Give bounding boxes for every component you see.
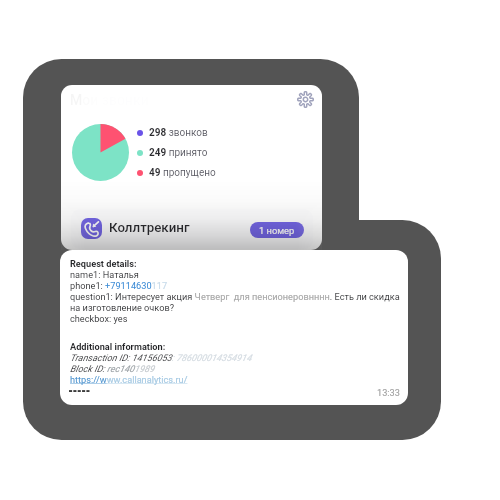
staticText: Request details: [70,258,137,269]
staticText: Коллтрекинг [109,220,190,236]
button[interactable]: Settings [291,85,319,113]
staticText: phone1: +79114630117 [70,280,168,291]
button[interactable]: Коллтрекинг [71,209,313,249]
staticText: name1: Наталья [70,269,139,280]
staticText: 49 пропущено [149,167,216,179]
staticText: checkbox: yes [70,313,128,324]
staticText: 13:33 [377,387,400,398]
staticText: Transaction ID: 14156053: 78600001435491… [70,352,252,363]
staticText: 298 звонков [149,127,208,139]
staticText: 1 номер [259,225,295,236]
staticText: Block ID: rec1401989 [70,363,155,374]
staticText: 249 принято [149,147,208,159]
staticText: https://www.callanalytics.ru/ [70,374,188,385]
staticText: Additional information: [70,341,166,352]
staticText: question1: Интересует акция Четверг для … [70,291,400,302]
staticText: на изготовление очков? [70,302,175,313]
